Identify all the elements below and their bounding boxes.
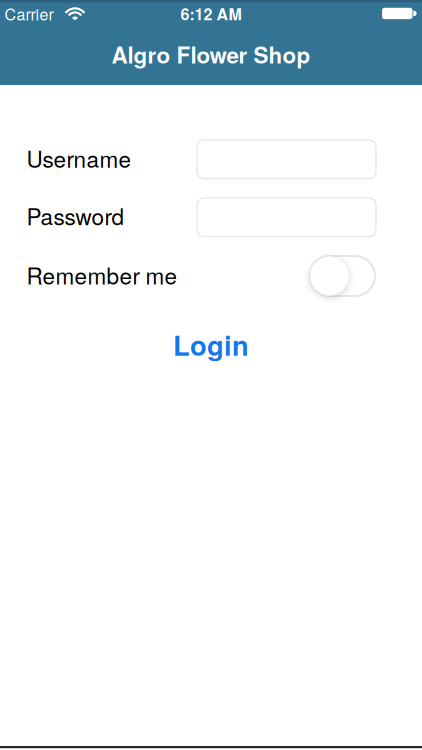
- staticText: Login: [173, 325, 249, 364]
- staticText: Password: [26, 199, 124, 231]
- staticText: 6:12 AM: [180, 2, 241, 25]
- staticText: Remember me: [26, 259, 177, 291]
- staticText: Carrier: [4, 2, 53, 25]
- button[interactable]: Remember me: [310, 255, 375, 297]
- button[interactable]: Password: [197, 198, 376, 236]
- button[interactable]: Login: [0, 325, 422, 364]
- staticText: Username: [26, 142, 131, 174]
- button[interactable]: Username: [197, 140, 376, 178]
- staticText: Algro Flower Shop: [111, 38, 310, 70]
